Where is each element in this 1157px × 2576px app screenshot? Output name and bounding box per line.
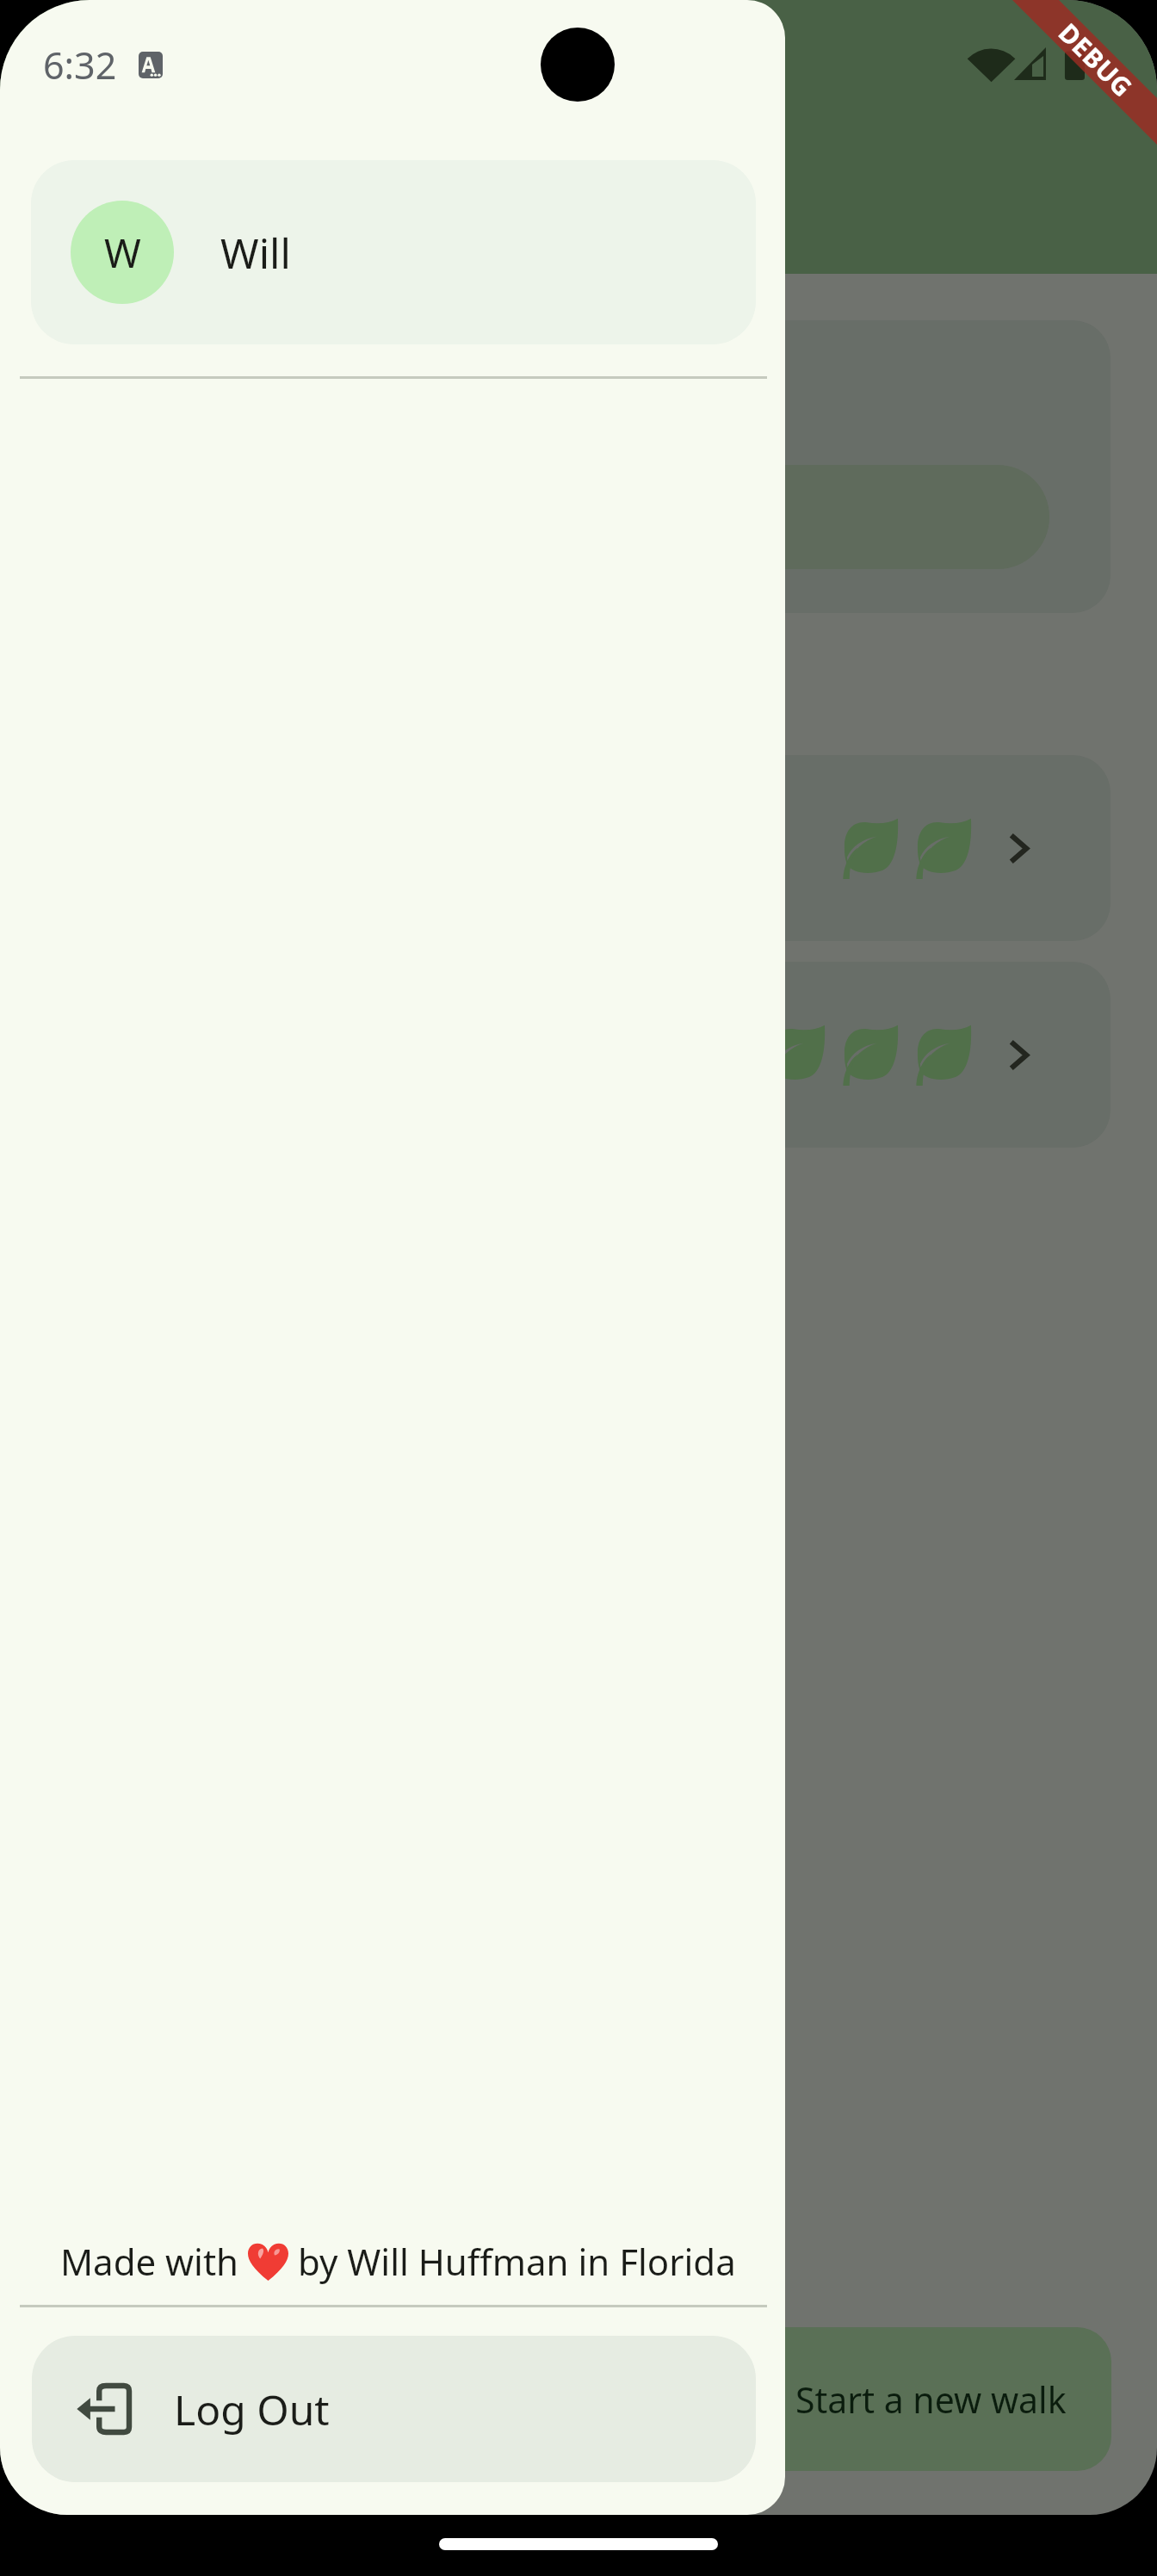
staticText: DEBUG <box>1051 15 1141 105</box>
staticText: 6:32 <box>43 40 117 90</box>
staticText: Log Out <box>174 2381 330 2437</box>
staticText: by Will Huffman in Florida <box>288 2237 736 2286</box>
button[interactable]: Walk details <box>46 962 1111 1148</box>
button[interactable]: Start a new walk <box>46 2327 1111 2471</box>
button[interactable]: Log out <box>32 2336 756 2482</box>
button[interactable]: Walk details <box>46 755 1111 941</box>
staticText: Will <box>220 225 291 281</box>
button[interactable]: Today's summary <box>46 320 1111 613</box>
other: Keyboard language <box>139 52 163 78</box>
staticText: Start a new walk <box>795 2375 1067 2424</box>
staticText: W <box>104 226 141 280</box>
other: Log out <box>77 2386 129 2432</box>
staticText: Made with <box>60 2237 248 2286</box>
button[interactable]: W <box>31 160 756 344</box>
